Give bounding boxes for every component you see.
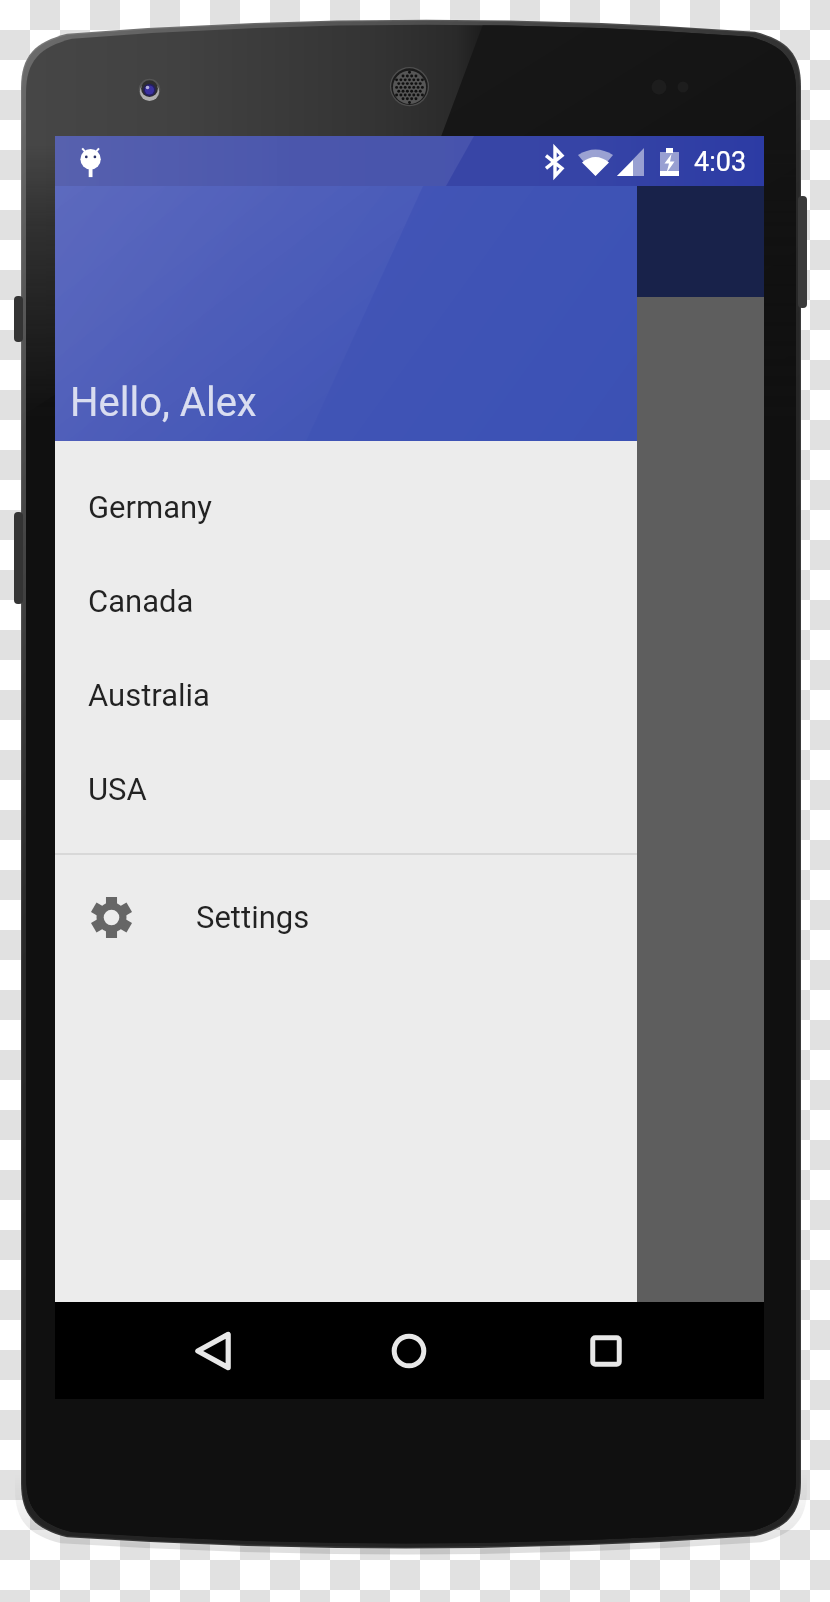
- button[interactable]: Recent apps: [547, 1302, 665, 1399]
- button[interactable]: Canada: [55, 554, 637, 648]
- staticText: Settings: [196, 899, 310, 935]
- button[interactable]: USA: [55, 742, 637, 836]
- staticText: Germany: [88, 489, 212, 525]
- staticText: Canada: [88, 583, 194, 619]
- button[interactable]: Home: [350, 1302, 468, 1399]
- staticText: Hello, Alex: [70, 379, 257, 426]
- button[interactable]: Australia: [55, 648, 637, 742]
- button[interactable]: Hello, Alex: [55, 136, 637, 441]
- button[interactable]: Settings: [55, 870, 637, 964]
- button[interactable]: Germany: [55, 460, 637, 554]
- button[interactable]: Back: [154, 1302, 272, 1399]
- staticText: USA: [88, 771, 147, 807]
- staticText: 4:03: [694, 146, 747, 178]
- staticText: Australia: [88, 677, 210, 713]
